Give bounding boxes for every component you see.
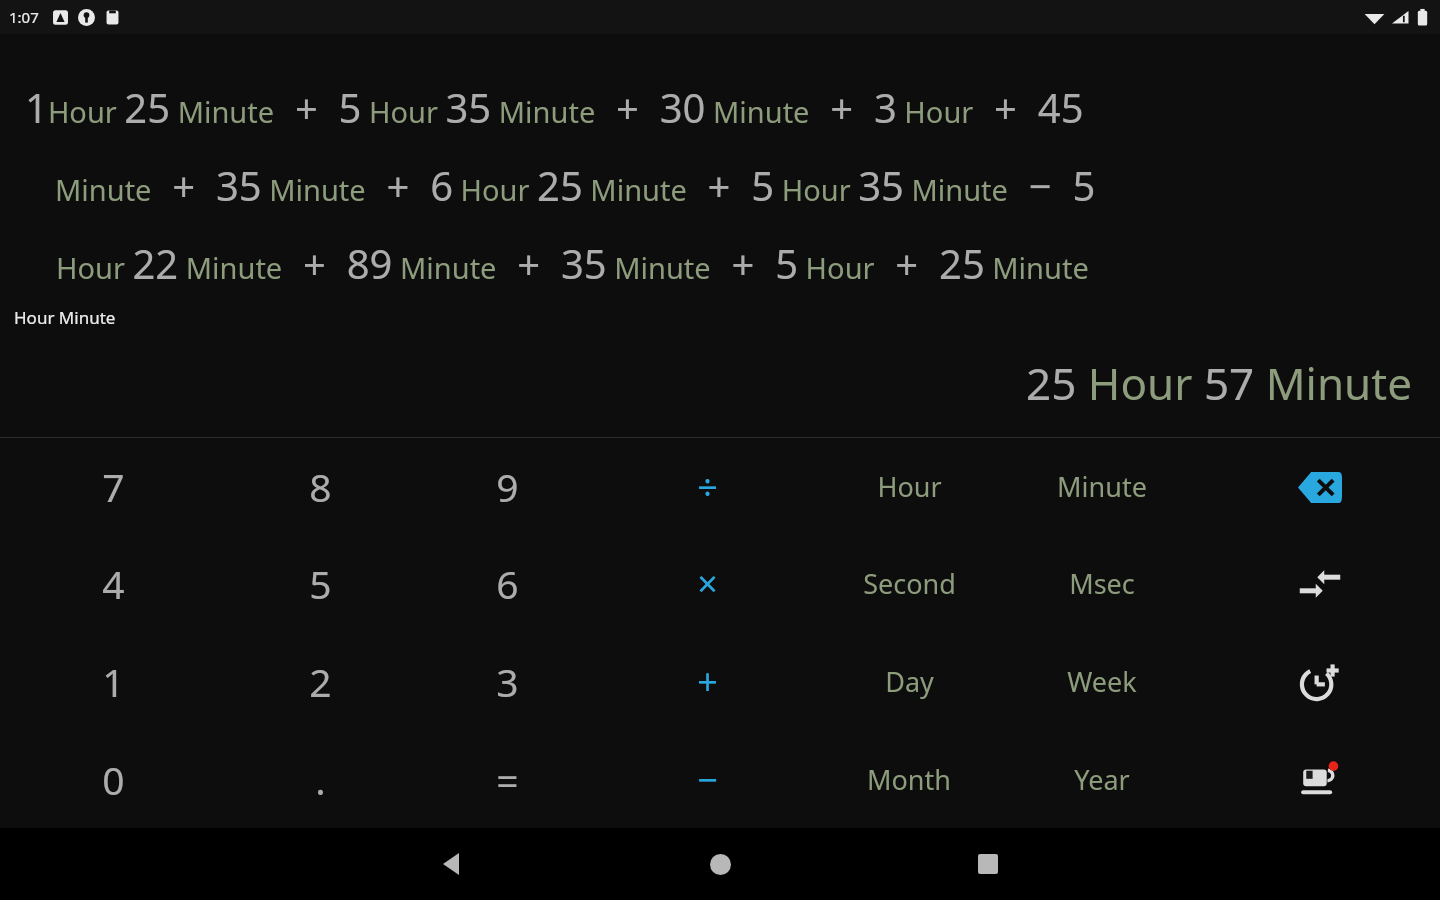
staticText: = — [496, 753, 519, 806]
button[interactable]: Home — [692, 836, 748, 892]
button[interactable]: 1 — [0, 632, 227, 730]
button[interactable]: × — [601, 535, 813, 632]
button[interactable]: Month — [813, 730, 1005, 828]
staticText: 6 — [496, 557, 519, 610]
staticText: Day — [885, 663, 934, 700]
button[interactable]: Hour — [813, 438, 1005, 535]
staticText: 7 — [102, 460, 125, 513]
staticText: 0 — [102, 753, 125, 806]
staticText: Year — [1074, 761, 1130, 798]
button[interactable]: 9 — [413, 438, 601, 535]
staticText: Hour — [877, 468, 942, 505]
button[interactable]: + — [601, 632, 813, 730]
button[interactable]: 4 — [0, 535, 227, 632]
button[interactable]: Backspace — [1290, 457, 1350, 517]
button[interactable]: Year — [1005, 730, 1199, 828]
staticText: × — [697, 559, 718, 608]
staticText: + — [697, 657, 718, 706]
button[interactable]: 5 — [227, 535, 413, 632]
staticText: − — [697, 755, 718, 804]
staticText: 4 — [102, 557, 125, 610]
staticText: 1 — [102, 655, 125, 708]
staticText: . — [315, 753, 326, 806]
button[interactable]: Recents — [960, 836, 1016, 892]
button[interactable]: Collapse — [1290, 554, 1350, 614]
button[interactable]: 2 — [227, 632, 413, 730]
button[interactable]: 6 — [413, 535, 601, 632]
button[interactable]: = — [413, 730, 601, 828]
button[interactable]: . — [227, 730, 413, 828]
staticText: 3 — [496, 655, 519, 708]
button[interactable]: 8 — [227, 438, 413, 535]
staticText: Month — [867, 761, 951, 798]
staticText: Minute + 35 Minute + 6 Hour 25 Minute + … — [55, 158, 1426, 212]
button[interactable]: Msec — [1005, 535, 1199, 632]
button[interactable]: Add time — [1290, 651, 1350, 711]
staticText: 1:07 — [9, 7, 39, 27]
staticText: Second — [863, 565, 956, 602]
staticText: 9 — [496, 460, 519, 513]
staticText: Hour 22 Minute + 89 Minute + 35 Minute +… — [56, 236, 1426, 290]
staticText: Msec — [1069, 565, 1135, 602]
staticText: Hour Minute — [14, 306, 116, 329]
button[interactable]: − — [601, 730, 813, 828]
button[interactable]: 3 — [413, 632, 601, 730]
staticText: Minute — [1057, 468, 1147, 505]
staticText: 1Hour 25 Minute + 5 Hour 35 Minute + 30 … — [25, 80, 1426, 134]
button[interactable]: Second — [813, 535, 1005, 632]
staticText: Week — [1067, 663, 1137, 700]
button[interactable]: Week — [1005, 632, 1199, 730]
staticText: ÷ — [697, 462, 718, 511]
staticText: 5 — [309, 557, 332, 610]
button[interactable]: Tea timer — [1290, 749, 1350, 809]
staticText: 8 — [309, 460, 332, 513]
button[interactable]: ÷ — [601, 438, 813, 535]
button[interactable]: Minute — [1005, 438, 1199, 535]
button[interactable]: Back — [424, 836, 480, 892]
button[interactable]: Day — [813, 632, 1005, 730]
button[interactable]: 0 — [0, 730, 227, 828]
staticText: 2 — [309, 655, 332, 708]
staticText: 25 Hour 57 Minute — [0, 353, 1412, 413]
button[interactable]: 7 — [0, 438, 227, 535]
